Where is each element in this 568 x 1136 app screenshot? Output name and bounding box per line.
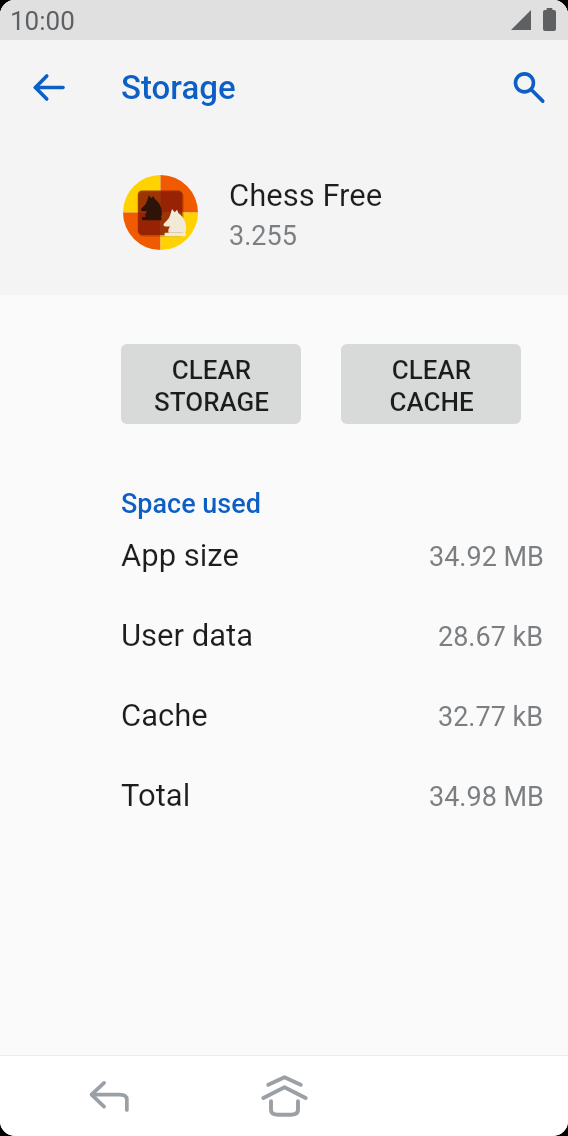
button[interactable]: User data [0, 595, 568, 675]
staticText: Total [121, 777, 191, 813]
button[interactable]: Search [500, 59, 556, 115]
staticText: Cache [121, 697, 208, 733]
staticText: 34.98 MB [429, 781, 544, 813]
staticText: Space used [121, 488, 261, 520]
button[interactable]: Cache [0, 675, 568, 755]
button[interactable]: Back [81, 1069, 137, 1125]
staticText: User data [121, 617, 254, 653]
staticText: 32.77 kB [438, 701, 544, 733]
staticText: Chess Free [229, 177, 383, 213]
staticText: Storage [121, 68, 236, 107]
button[interactable]: Home [253, 1065, 315, 1127]
button[interactable]: Back [20, 59, 76, 115]
staticText: 28.67 kB [438, 621, 544, 653]
staticText: App size [121, 537, 239, 573]
button[interactable]: App size [0, 515, 568, 595]
button[interactable]: CLEAR CACHE [341, 344, 521, 424]
button[interactable]: CLEAR STORAGE [121, 344, 301, 424]
staticText: CLEAR CACHE [389, 355, 474, 418]
button[interactable]: Total [0, 755, 568, 835]
staticText: 10:00 [10, 6, 75, 36]
staticText: 3.255 [229, 220, 297, 252]
staticText: CLEAR STORAGE [154, 355, 269, 418]
staticText: 34.92 MB [429, 541, 544, 573]
